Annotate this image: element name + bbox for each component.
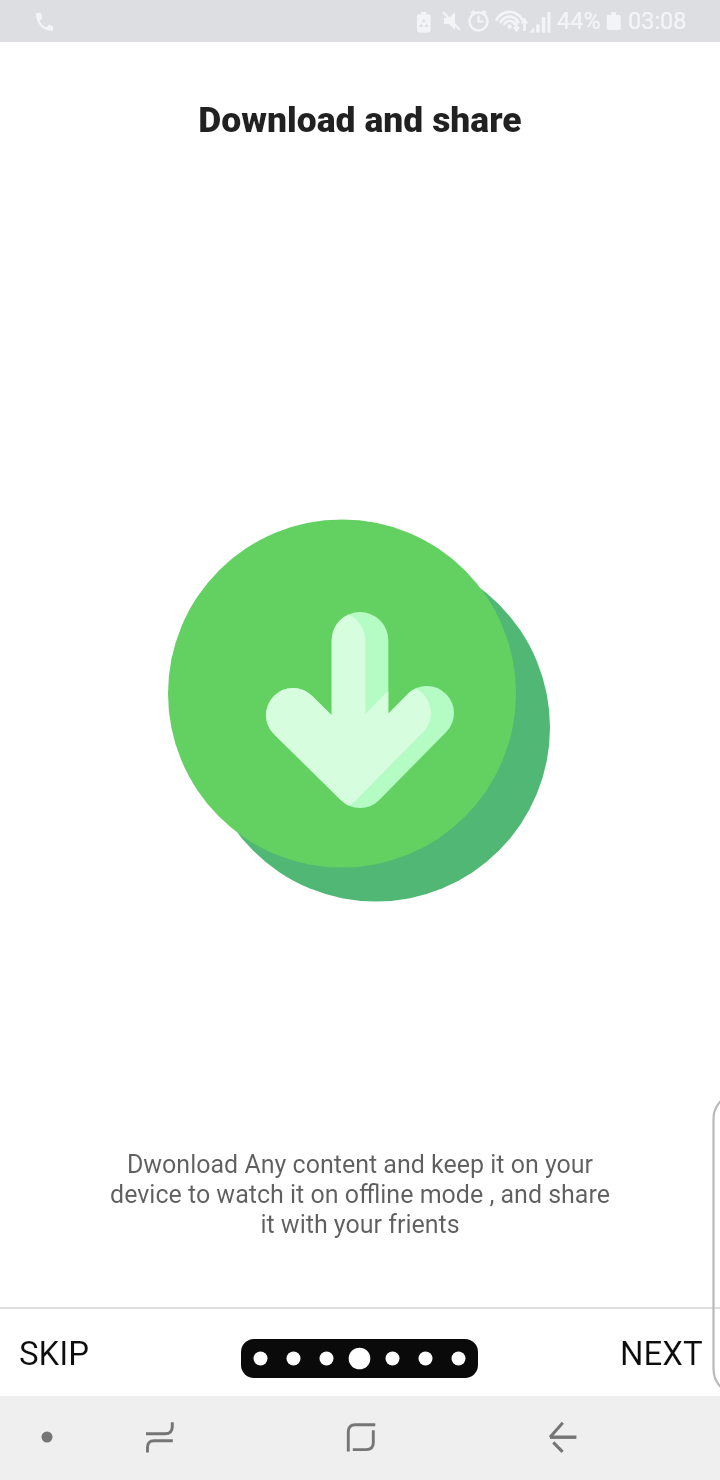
button[interactable]: Page indicator bbox=[241, 1339, 478, 1378]
staticText: NEXT bbox=[620, 1334, 703, 1373]
staticText: 03:08 bbox=[628, 7, 687, 35]
staticText: Download and share bbox=[0, 99, 720, 141]
staticText: 44% bbox=[557, 7, 601, 35]
button[interactable]: NEXT bbox=[596, 1320, 720, 1387]
staticText: SKIP bbox=[19, 1334, 90, 1373]
staticText: Dwonload Any content and keep it on your… bbox=[0, 1150, 720, 1239]
button[interactable]: SKIP bbox=[0, 1320, 114, 1387]
